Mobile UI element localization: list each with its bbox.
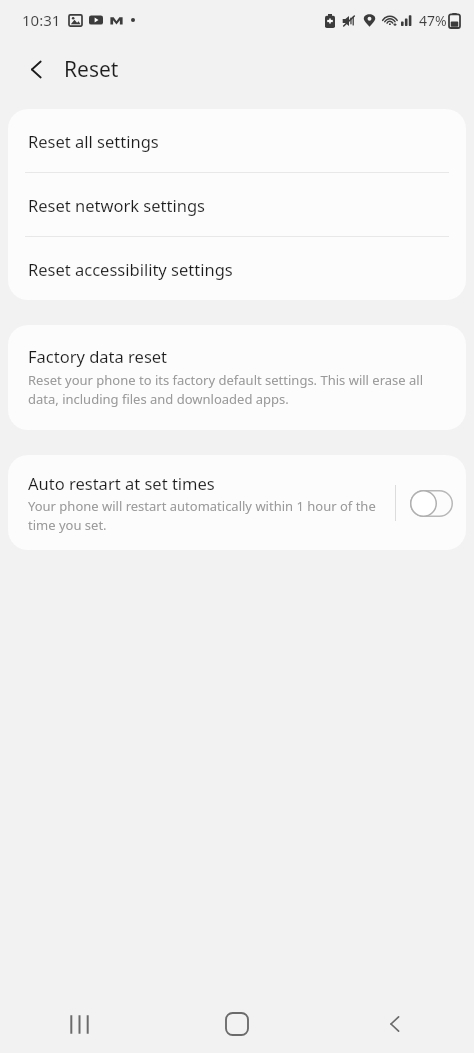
staticText: Your phone will restart automatically wi… — [28, 497, 385, 534]
staticText: Reset network settings — [28, 194, 205, 216]
staticText: Reset all settings — [28, 130, 159, 152]
staticText: Reset accessibility settings — [28, 258, 233, 280]
button[interactable]: Home — [209, 996, 265, 1052]
staticText: Auto restart at set times — [28, 472, 215, 494]
staticText: 10:31 — [22, 10, 61, 30]
staticText: Reset your phone to its factory default … — [28, 371, 446, 408]
staticText: 47% — [419, 11, 447, 30]
button[interactable]: Reset network settings — [8, 173, 466, 236]
button[interactable]: Reset accessibility settings — [8, 237, 466, 300]
staticText: Reset — [64, 55, 119, 84]
button[interactable]: Auto restart toggle — [396, 476, 466, 530]
button[interactable]: Reset all settings — [8, 109, 466, 172]
button[interactable]: Recent apps — [51, 996, 107, 1052]
button[interactable]: Back — [14, 47, 58, 91]
staticText: Factory data reset — [28, 345, 168, 367]
button[interactable]: Back — [367, 996, 423, 1052]
button[interactable]: Factory data reset — [8, 325, 466, 430]
button[interactable]: Auto restart at set times — [8, 458, 395, 548]
